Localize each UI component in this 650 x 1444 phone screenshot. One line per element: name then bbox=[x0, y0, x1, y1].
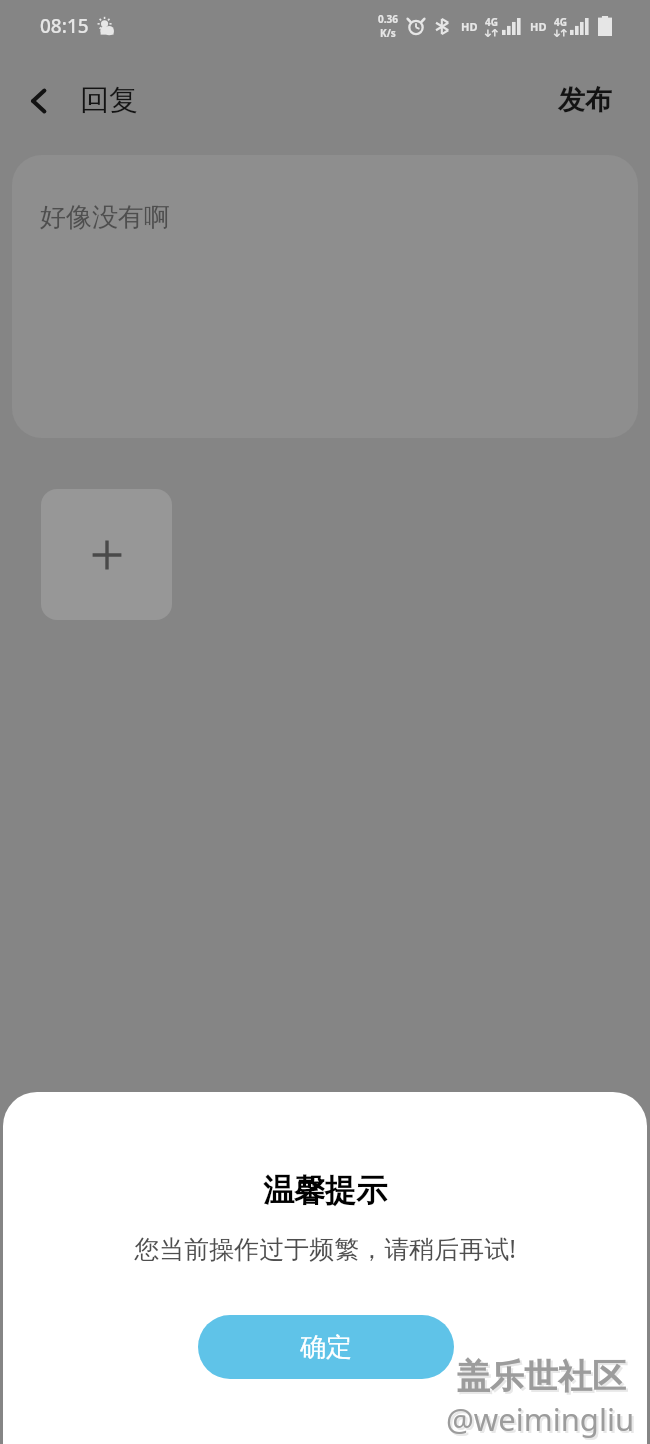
staticText: 0.36 bbox=[378, 12, 398, 26]
button[interactable]: 好像没有啊 bbox=[12, 155, 638, 438]
staticText: HD bbox=[530, 19, 547, 34]
button[interactable]: 确定 bbox=[198, 1315, 454, 1379]
staticText: 您当前操作过于频繁，请稍后再试! bbox=[134, 1231, 516, 1265]
staticText: @weimingliu bbox=[448, 1400, 637, 1442]
staticText: 4G bbox=[554, 15, 567, 29]
staticText: 盖乐世社区 bbox=[458, 1357, 628, 1400]
staticText: 温馨提示 bbox=[263, 1171, 387, 1210]
staticText: 08:15 bbox=[40, 13, 89, 39]
button[interactable]: Back bbox=[0, 68, 158, 133]
staticText: 回复 bbox=[80, 82, 138, 119]
staticText: 盖乐世社区 bbox=[456, 1355, 626, 1398]
other: Back bbox=[24, 86, 54, 116]
staticText: 好像没有啊 bbox=[40, 201, 170, 234]
staticText: 4G bbox=[485, 15, 498, 29]
button[interactable]: 发布 bbox=[534, 69, 650, 131]
staticText: 确定 bbox=[300, 1331, 352, 1364]
staticText: @weimingliu bbox=[446, 1398, 635, 1440]
staticText: K/s bbox=[380, 26, 396, 40]
button[interactable]: Add photo bbox=[41, 489, 172, 620]
staticText: 发布 bbox=[558, 83, 612, 117]
staticText: HD bbox=[461, 19, 478, 34]
